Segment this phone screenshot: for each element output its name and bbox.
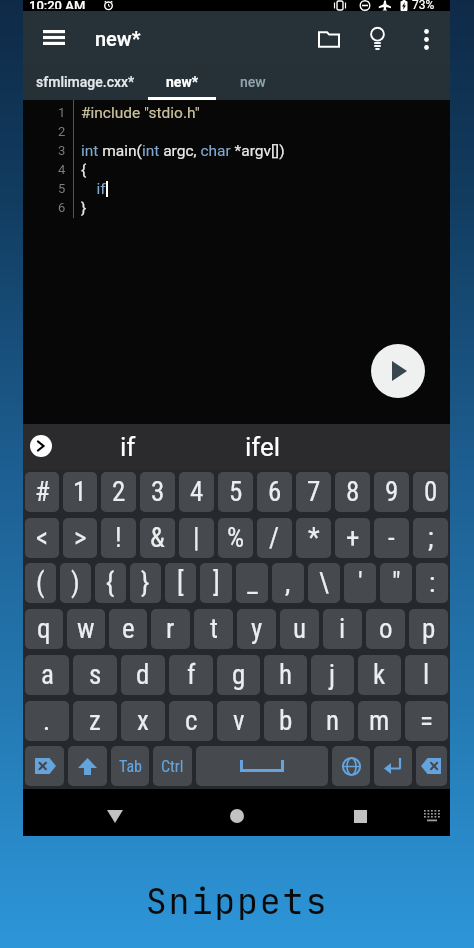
staticText: sfmlimage.cxx* <box>36 74 135 90</box>
button[interactable]: m <box>358 701 401 741</box>
button[interactable]: u <box>280 609 319 649</box>
button[interactable]: ! <box>101 518 136 558</box>
staticText: b <box>279 705 293 737</box>
staticText: 4 <box>58 162 66 177</box>
button[interactable]: r <box>151 609 190 649</box>
button[interactable]: # <box>25 472 59 512</box>
button[interactable]: p <box>409 609 448 649</box>
staticText: , <box>285 567 291 599</box>
button[interactable]: Ctrl <box>153 746 192 786</box>
button[interactable] <box>340 796 380 836</box>
button[interactable]: 4 <box>179 472 214 512</box>
button[interactable]: } <box>130 563 161 603</box>
button[interactable]: if <box>83 424 173 469</box>
button[interactable]: - <box>374 518 409 558</box>
button[interactable]: 6 <box>257 472 292 512</box>
button[interactable] <box>317 29 341 49</box>
button[interactable]: * <box>296 518 331 558</box>
button[interactable] <box>416 746 447 786</box>
button[interactable]: f <box>169 655 213 695</box>
button[interactable]: ] <box>200 563 232 603</box>
staticText: % <box>227 522 245 554</box>
button[interactable] <box>415 799 449 833</box>
staticText: 2 <box>112 476 126 508</box>
button[interactable]: . <box>25 701 69 741</box>
button[interactable] <box>332 746 370 786</box>
staticText: & <box>150 522 165 554</box>
button[interactable]: 0 <box>413 472 448 512</box>
staticText: 7 <box>307 476 321 508</box>
button[interactable]: " <box>380 563 412 603</box>
button[interactable]: < <box>25 518 59 558</box>
button[interactable]: ' <box>344 563 376 603</box>
button[interactable]: [ <box>165 563 196 603</box>
button[interactable]: n <box>311 701 354 741</box>
staticText: x <box>137 705 149 737</box>
button[interactable] <box>196 746 328 786</box>
button[interactable]: t <box>194 609 233 649</box>
button[interactable]: x <box>121 701 165 741</box>
button[interactable]: d <box>121 655 165 695</box>
button[interactable] <box>416 26 436 52</box>
button[interactable]: : <box>416 563 448 603</box>
button[interactable]: a <box>25 655 69 695</box>
button[interactable]: 3 <box>140 472 175 512</box>
staticText: k <box>373 659 386 691</box>
button[interactable]: 1 <box>63 472 97 512</box>
button[interactable]: l <box>405 655 448 695</box>
button[interactable] <box>68 746 107 786</box>
button[interactable]: 7 <box>296 472 331 512</box>
button[interactable]: Tab <box>111 746 149 786</box>
button[interactable]: > <box>63 518 97 558</box>
button[interactable]: h <box>264 655 307 695</box>
button[interactable]: = <box>405 701 448 741</box>
button[interactable]: 2 <box>101 472 136 512</box>
button[interactable]: q <box>25 609 63 649</box>
button[interactable] <box>374 746 412 786</box>
staticText: 5 <box>229 476 243 508</box>
button[interactable]: 8 <box>335 472 370 512</box>
button[interactable]: ( <box>25 563 56 603</box>
button[interactable]: / <box>257 518 292 558</box>
button[interactable]: i <box>323 609 362 649</box>
button[interactable] <box>365 26 389 52</box>
button[interactable]: \ <box>308 563 340 603</box>
button[interactable]: k <box>358 655 401 695</box>
button[interactable]: y <box>237 609 276 649</box>
button[interactable]: _ <box>236 563 268 603</box>
button[interactable]: , <box>272 563 304 603</box>
button[interactable]: ) <box>60 563 91 603</box>
button[interactable]: e <box>109 609 147 649</box>
button[interactable]: o <box>366 609 405 649</box>
button[interactable]: g <box>217 655 260 695</box>
button[interactable]: v <box>217 701 260 741</box>
button[interactable]: new* <box>147 64 217 100</box>
button[interactable]: c <box>169 701 213 741</box>
button[interactable]: b <box>264 701 307 741</box>
button[interactable]: w <box>67 609 105 649</box>
button[interactable]: ; <box>413 518 448 558</box>
button[interactable]: s <box>73 655 117 695</box>
staticText: - <box>388 522 395 554</box>
staticText: l <box>423 659 430 691</box>
button[interactable]: 9 <box>374 472 409 512</box>
button[interactable]: % <box>218 518 253 558</box>
button[interactable] <box>95 796 135 836</box>
button[interactable]: & <box>140 518 175 558</box>
button[interactable]: j <box>311 655 354 695</box>
button[interactable]: { <box>95 563 126 603</box>
button[interactable] <box>25 746 64 786</box>
button[interactable]: + <box>335 518 370 558</box>
button[interactable] <box>217 796 257 836</box>
button[interactable]: z <box>73 701 117 741</box>
button[interactable] <box>371 344 425 398</box>
button[interactable]: ifel <box>218 424 308 469</box>
button[interactable]: 5 <box>218 472 253 512</box>
staticText: t <box>210 613 218 645</box>
button[interactable]: new <box>219 64 287 100</box>
button[interactable]: sfmlimage.cxx* <box>23 64 147 100</box>
button[interactable] <box>30 435 52 457</box>
button[interactable] <box>39 22 69 52</box>
button[interactable]: | <box>179 518 214 558</box>
staticText: z <box>89 705 101 737</box>
